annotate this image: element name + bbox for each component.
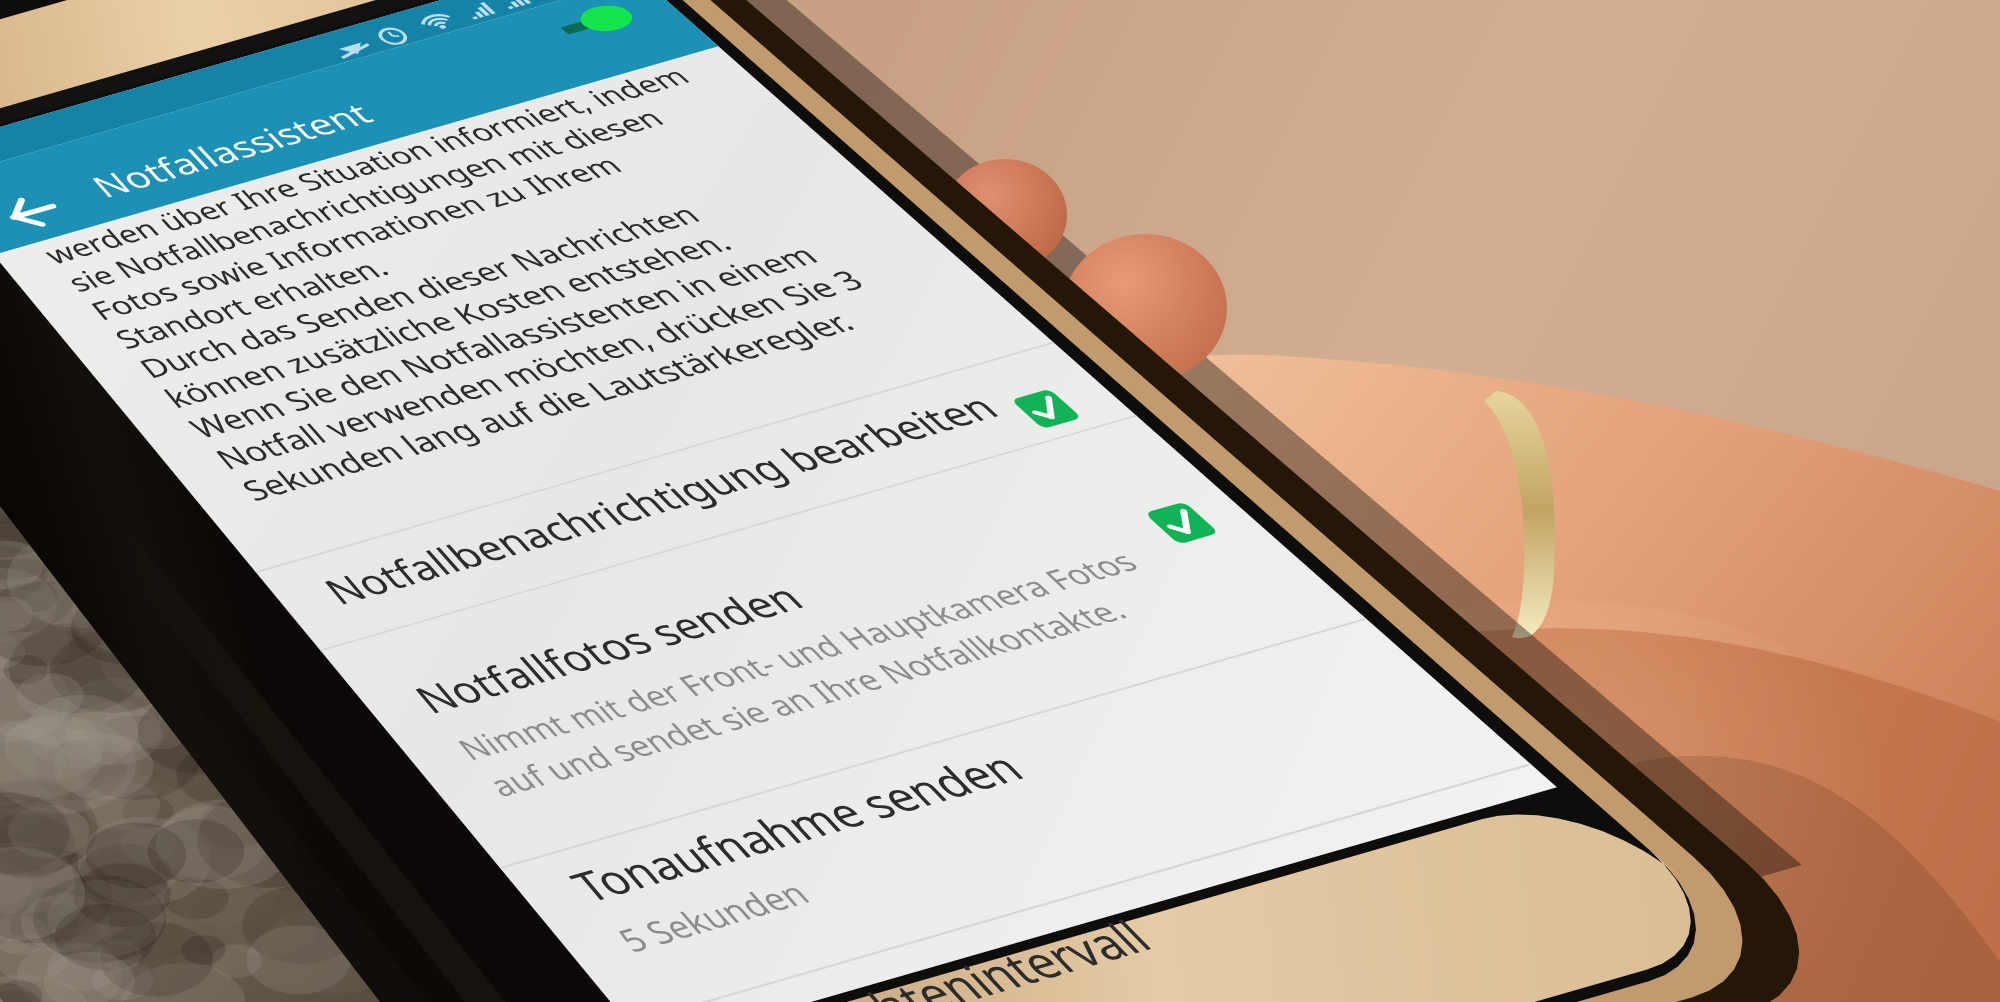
button[interactable]: Notfallassistent settings screen on phon… xyxy=(0,0,2000,1002)
